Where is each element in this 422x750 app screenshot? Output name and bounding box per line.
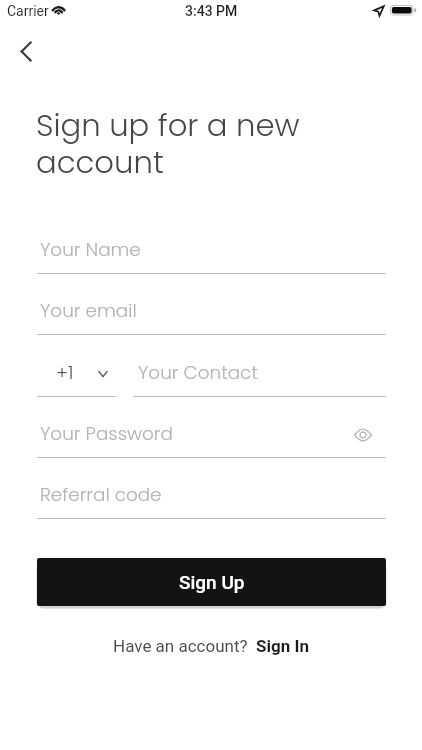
staticText: Have an account? xyxy=(113,636,248,656)
staticText: Sign In xyxy=(256,636,309,656)
button[interactable]: Your Contact xyxy=(133,356,386,397)
button[interactable]: Your Password xyxy=(37,417,386,458)
button[interactable]: Sign Up xyxy=(37,558,386,606)
staticText: account xyxy=(36,141,164,184)
staticText: Sign Up xyxy=(179,571,245,593)
button[interactable]: Referral code xyxy=(37,478,386,519)
staticText: Carrier xyxy=(7,3,49,19)
staticText: Sign up for a new xyxy=(36,104,300,147)
staticText: Referral code xyxy=(40,482,162,508)
staticText: Your Password xyxy=(40,421,173,447)
button[interactable]: Sign In xyxy=(256,636,309,656)
button[interactable]: Back xyxy=(6,35,39,68)
staticText: Your email xyxy=(40,298,137,324)
staticText: Your Contact xyxy=(138,360,258,386)
button[interactable]: Your email xyxy=(37,294,386,335)
button[interactable]: Your Name xyxy=(37,233,386,274)
staticText: 3:43 PM xyxy=(185,3,238,19)
staticText: +1 xyxy=(56,360,74,386)
button[interactable]: Show password xyxy=(350,422,376,448)
button[interactable]: +1 xyxy=(37,356,116,397)
staticText: Your Name xyxy=(40,237,141,263)
